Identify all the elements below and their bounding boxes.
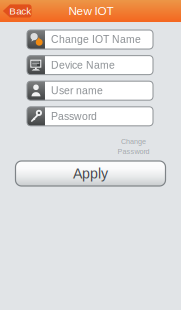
button[interactable]: Change IOT Name — [27, 30, 153, 49]
button[interactable]: Device Name — [27, 56, 153, 75]
staticText: Change — [121, 137, 146, 145]
button[interactable]: Apply — [15, 161, 165, 186]
button[interactable]: Change — [117, 137, 149, 156]
button[interactable]: User name — [27, 81, 153, 100]
staticText: Apply — [73, 166, 108, 181]
staticText: User name — [51, 85, 103, 96]
button[interactable]: Password — [27, 107, 153, 126]
staticText: Password — [51, 110, 97, 122]
staticText: Back — [9, 5, 31, 16]
staticText: Password — [117, 147, 149, 155]
staticText: New IOT — [68, 4, 113, 17]
button[interactable]: Back — [2, 4, 32, 18]
staticText: Device Name — [51, 59, 115, 71]
staticText: Change IOT Name — [51, 34, 141, 45]
